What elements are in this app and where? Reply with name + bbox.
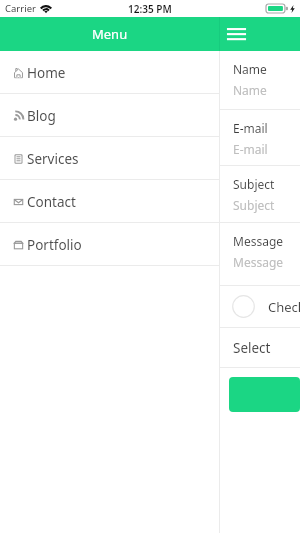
button[interactable]: Submit bbox=[229, 377, 300, 412]
staticText: Carrier bbox=[5, 2, 36, 15]
button[interactable]: Check bbox=[220, 286, 300, 328]
button[interactable]: Name bbox=[220, 51, 300, 110]
button[interactable]: Open navigation menu bbox=[220, 17, 300, 51]
staticText: Check bbox=[268, 298, 300, 316]
staticText: Select bbox=[233, 339, 271, 357]
button[interactable]: Services bbox=[0, 137, 219, 179]
button[interactable]: E-mail bbox=[220, 110, 300, 166]
button[interactable]: Select bbox=[220, 328, 300, 368]
staticText: Name bbox=[233, 61, 267, 77]
staticText: Name bbox=[233, 82, 267, 98]
button[interactable]: Contact bbox=[0, 180, 219, 222]
staticText: Home bbox=[27, 64, 66, 82]
staticText: Subject bbox=[233, 176, 275, 192]
staticText: Portfolio bbox=[27, 236, 82, 254]
staticText: Menu bbox=[92, 25, 128, 43]
staticText: 12:35 PM bbox=[128, 2, 172, 16]
button[interactable]: Subject bbox=[220, 166, 300, 223]
staticText: Services bbox=[27, 150, 79, 168]
button[interactable]: Portfolio bbox=[0, 223, 219, 265]
staticText: E-mail bbox=[233, 120, 268, 136]
button[interactable]: Blog bbox=[0, 94, 219, 136]
staticText: Message bbox=[233, 233, 284, 249]
staticText: Message bbox=[233, 254, 284, 270]
staticText: Subject bbox=[233, 197, 275, 213]
button[interactable]: Home bbox=[0, 51, 219, 93]
staticText: Blog bbox=[27, 107, 56, 125]
staticText: E-mail bbox=[233, 141, 268, 157]
staticText: Contact bbox=[27, 193, 76, 211]
button[interactable]: Menu bbox=[0, 17, 219, 51]
button[interactable]: Message bbox=[220, 223, 300, 286]
